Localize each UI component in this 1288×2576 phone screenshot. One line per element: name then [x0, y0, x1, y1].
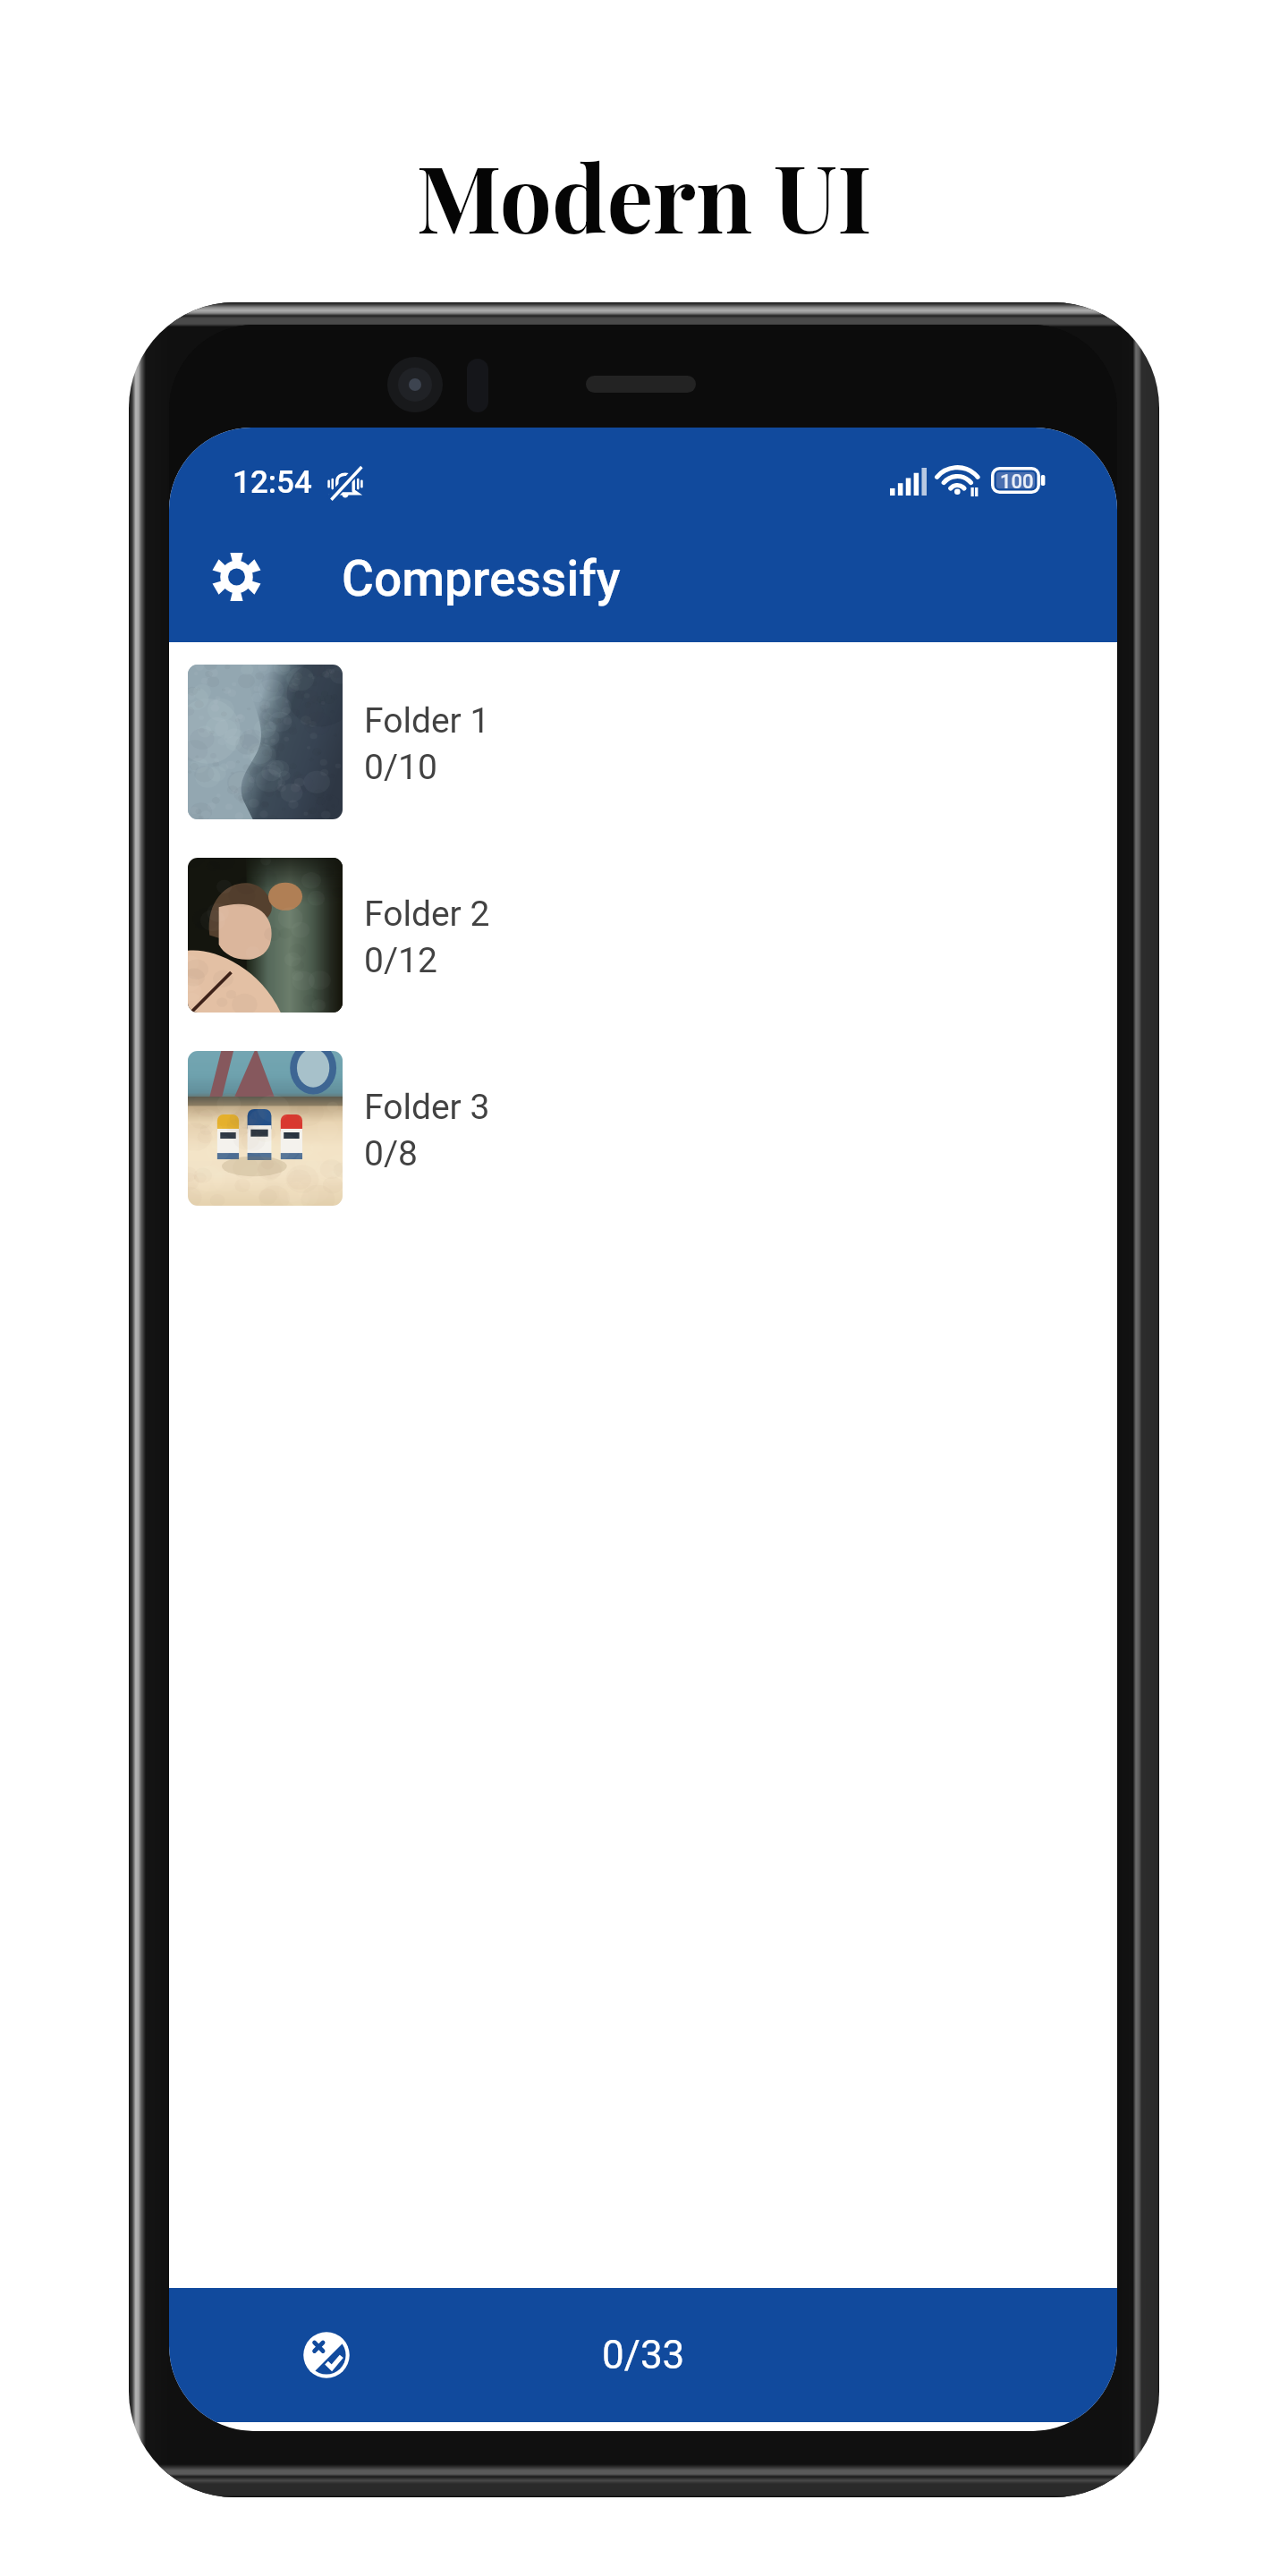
staticText: 100 — [1000, 470, 1034, 494]
button[interactable]: Folder 2 — [169, 838, 1117, 1031]
staticText: Folder 3 — [364, 1087, 490, 1128]
staticText: 12:54 — [233, 464, 312, 501]
staticText: 0/12 — [364, 940, 437, 981]
staticText: Modern UI — [0, 134, 1288, 257]
button[interactable]: Toggle selection — [294, 2323, 359, 2387]
button[interactable]: Folder 1 — [169, 645, 1117, 838]
staticText: Folder 1 — [364, 700, 490, 741]
staticText: Folder 2 — [364, 894, 490, 935]
staticText: Compressify — [342, 550, 621, 607]
staticText: 0/33 — [602, 2332, 685, 2378]
staticText: 0/8 — [364, 1133, 418, 1174]
button[interactable]: Settings — [200, 545, 272, 609]
staticText: 0/10 — [364, 747, 437, 788]
button[interactable]: Folder 3 — [169, 1031, 1117, 1224]
